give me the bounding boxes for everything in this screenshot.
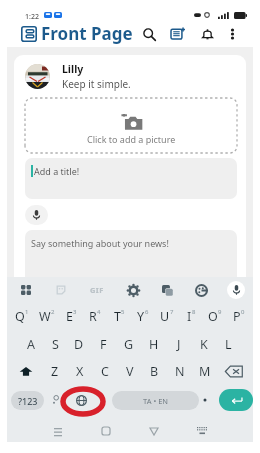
staticText: 0 [241, 308, 245, 316]
button[interactable]: F [91, 330, 116, 358]
staticText: S [52, 336, 59, 353]
button[interactable]: C [92, 358, 117, 385]
button[interactable]: Y [131, 302, 155, 330]
staticText: ?123 [18, 395, 38, 407]
button[interactable]: J [166, 330, 191, 358]
button[interactable]: Hide keyboard [193, 422, 211, 440]
staticText: Click to add a picture [87, 133, 176, 145]
staticText: K [200, 336, 208, 353]
staticText: 8 [192, 308, 196, 316]
button[interactable]: S [43, 330, 67, 358]
staticText: I [187, 308, 192, 325]
staticText: 7 [170, 308, 174, 316]
button[interactable]: R [83, 302, 107, 330]
button[interactable] [199, 383, 210, 417]
button[interactable]: GIF [87, 280, 107, 300]
button[interactable]: Voice input [25, 205, 48, 225]
staticText: L [225, 336, 232, 353]
button[interactable]: D [67, 330, 91, 358]
staticText: F [100, 336, 107, 353]
button[interactable]: P [227, 302, 251, 330]
button[interactable]: X [67, 358, 92, 385]
button[interactable]: Voice typing [227, 281, 245, 299]
staticText: R [89, 308, 97, 325]
button[interactable]: TA • EN [112, 391, 199, 410]
staticText: P [233, 308, 241, 325]
button[interactable]: Home [97, 422, 115, 440]
staticText: W [39, 308, 51, 325]
staticText: M [199, 363, 211, 380]
button[interactable]: T [107, 302, 131, 330]
staticText: Front Page [41, 22, 133, 45]
staticText: 6 [145, 308, 149, 316]
staticText: 5 [121, 308, 125, 316]
button[interactable]: Search [138, 23, 160, 45]
button[interactable]: N [167, 358, 192, 385]
button[interactable]: B [142, 358, 167, 385]
button[interactable] [44, 383, 66, 417]
button[interactable]: Shift [10, 358, 42, 385]
staticText: GIF [90, 285, 104, 295]
staticText: A [27, 336, 35, 353]
staticText: Add a title! [34, 165, 80, 177]
button[interactable]: K [191, 330, 216, 358]
staticText: U [160, 308, 170, 325]
button[interactable]: Translate [159, 282, 175, 298]
button[interactable]: Add a title! [25, 158, 237, 199]
staticText: 1 [25, 308, 29, 316]
staticText: Y [137, 308, 145, 325]
staticText: G [124, 336, 134, 353]
button[interactable]: V [117, 358, 142, 385]
staticText: 9 [218, 308, 222, 316]
button[interactable]: G [116, 330, 141, 358]
button[interactable]: New post [167, 23, 189, 45]
staticText: E [66, 308, 73, 325]
staticText: D [74, 336, 84, 353]
staticText: V [126, 363, 134, 380]
button[interactable]: Themes [193, 282, 209, 298]
staticText: H [149, 336, 159, 353]
staticText: Keep it simple. [62, 77, 131, 91]
button[interactable]: Z [42, 358, 67, 385]
button[interactable]: W [34, 302, 59, 330]
staticText: J [177, 336, 181, 353]
button[interactable]: Back [145, 422, 163, 440]
staticText: X [76, 363, 84, 380]
button[interactable]: M [192, 358, 217, 385]
staticText: 4 [97, 308, 101, 316]
button[interactable]: Backspace [217, 358, 250, 385]
button[interactable]: Click to add a picture [25, 98, 237, 153]
button[interactable]: Apps [18, 282, 34, 298]
button[interactable]: I [179, 302, 203, 330]
staticText: C [101, 363, 109, 380]
button[interactable]: Recents [49, 422, 67, 440]
button[interactable]: L [216, 330, 241, 358]
staticText: Z [51, 363, 59, 380]
button[interactable]: Enter [219, 389, 253, 411]
staticText: Q [15, 308, 25, 325]
staticText: TA • EN [143, 396, 169, 406]
button[interactable]: O [203, 302, 227, 330]
staticText: N [175, 363, 185, 380]
button[interactable]: Stickers [53, 282, 69, 298]
button[interactable]: H [141, 330, 166, 358]
staticText: Say something about your news! [31, 237, 169, 249]
button[interactable]: Say something about your news! [25, 230, 237, 277]
staticText: B [150, 363, 159, 380]
staticText: 1:22 [25, 12, 39, 20]
button[interactable]: U [155, 302, 179, 330]
button[interactable]: Notifications [196, 23, 218, 45]
button[interactable]: ?123 [11, 391, 44, 410]
button[interactable]: Settings [125, 282, 141, 298]
staticText: T [114, 308, 121, 325]
button[interactable]: E [59, 302, 83, 330]
staticText: Lilly [62, 62, 84, 76]
staticText: 2 [51, 308, 55, 316]
button[interactable]: A [19, 330, 43, 358]
button[interactable]: More options [224, 26, 240, 42]
staticText: 3 [73, 308, 77, 316]
button[interactable]: Change language [66, 383, 97, 417]
staticText: O [208, 308, 218, 325]
button[interactable]: Q [9, 302, 34, 330]
